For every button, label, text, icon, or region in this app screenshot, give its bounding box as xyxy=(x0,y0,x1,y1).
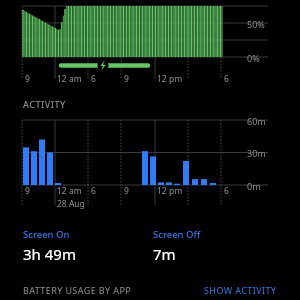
staticText: 9 xyxy=(25,73,30,85)
staticText: SHOW ACTIVITY xyxy=(204,284,277,296)
button[interactable]: Screen On xyxy=(23,228,153,264)
staticText: 12 pm xyxy=(157,73,183,85)
staticText: 30m xyxy=(247,147,266,159)
staticText: 50% xyxy=(247,18,265,30)
staticText: 9 xyxy=(124,73,129,85)
staticText: 6 xyxy=(91,185,96,197)
staticText: 9 xyxy=(25,185,30,197)
staticText: 6 xyxy=(91,73,96,85)
staticText: 7m xyxy=(153,244,176,264)
staticText: Screen Off xyxy=(153,228,201,241)
staticText: Screen On xyxy=(23,228,70,241)
staticText: BATTERY USAGE BY APP xyxy=(23,284,132,296)
staticText: 6 xyxy=(224,185,229,197)
staticText: 0% xyxy=(247,52,260,64)
staticText: 9 xyxy=(124,185,129,197)
staticText: 12 am xyxy=(57,185,82,197)
button[interactable]: SHOW ACTIVITY xyxy=(204,284,277,296)
staticText: 0m xyxy=(247,180,261,192)
staticText: 12 pm xyxy=(157,185,183,197)
staticText: ACTIVITY xyxy=(23,98,66,110)
staticText: 60m xyxy=(247,115,266,127)
staticText: 28 Aug xyxy=(57,198,85,210)
staticText: 6 xyxy=(224,73,229,85)
staticText: 3h 49m xyxy=(23,244,76,264)
staticText: 12 am xyxy=(57,73,82,85)
button[interactable]: Screen Off xyxy=(153,228,201,264)
